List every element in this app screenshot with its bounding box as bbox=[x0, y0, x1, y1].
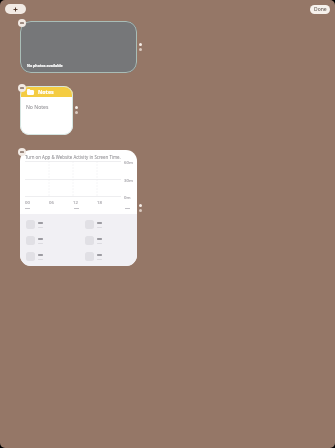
staticText: Notes bbox=[38, 88, 54, 95]
staticText: 06 bbox=[49, 199, 54, 205]
button[interactable]: App usage entry bbox=[26, 250, 78, 263]
staticText: 60m bbox=[124, 159, 133, 165]
button[interactable]: App usage entry bbox=[85, 234, 137, 247]
staticText: 18 bbox=[97, 199, 102, 205]
button[interactable]: Remove widget bbox=[18, 19, 26, 27]
button[interactable]: App usage entry bbox=[26, 234, 78, 247]
button[interactable]: Remove widget bbox=[18, 148, 26, 156]
button[interactable]: No photos available bbox=[20, 21, 137, 73]
button[interactable]: App usage entry bbox=[26, 218, 78, 231]
staticText: Turn on App & Website Activity in Screen… bbox=[25, 154, 121, 160]
staticText: 30m bbox=[124, 177, 133, 183]
staticText: Done bbox=[314, 6, 327, 13]
button[interactable]: App usage entry bbox=[85, 250, 137, 263]
staticText: No Notes bbox=[26, 104, 49, 111]
button[interactable]: Turn on App & Website Activity in Screen… bbox=[20, 150, 137, 266]
button[interactable]: Done bbox=[310, 5, 330, 14]
button[interactable]: Remove widget bbox=[18, 84, 26, 92]
button[interactable]: App usage entry bbox=[85, 218, 137, 231]
staticText: No photos available bbox=[27, 63, 63, 68]
staticText: 12 bbox=[73, 199, 78, 205]
button[interactable]: Add widget bbox=[5, 4, 26, 14]
staticText: 00 bbox=[25, 199, 30, 205]
button[interactable]: Notes bbox=[20, 86, 73, 135]
staticText: 0m bbox=[124, 194, 131, 200]
